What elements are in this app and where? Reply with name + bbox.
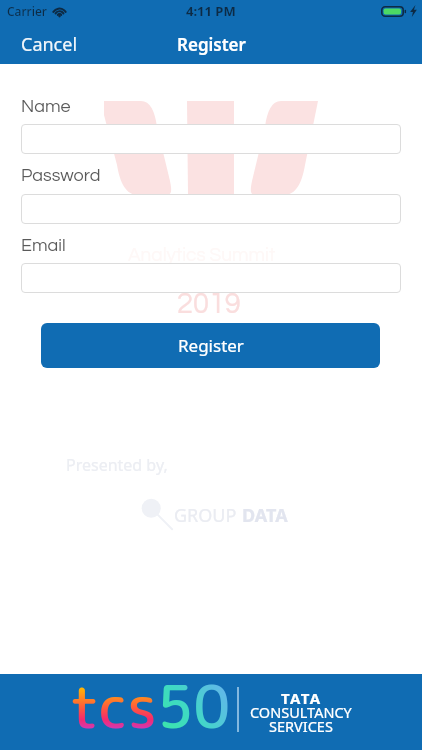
staticText: DATA: [242, 503, 288, 528]
staticText: GROUP: [174, 503, 242, 528]
staticText: TATA: [281, 688, 322, 708]
staticText: Password: [21, 166, 101, 185]
staticText: Email: [21, 236, 66, 255]
staticText: Register: [178, 334, 244, 357]
button[interactable]: Email input: [21, 263, 401, 293]
button[interactable]: Password input: [21, 194, 401, 224]
staticText: Carrier: [7, 3, 47, 19]
staticText: 50: [157, 666, 231, 742]
staticText: CONSULTANCY: [250, 702, 352, 722]
button[interactable]: Register: [41, 323, 380, 368]
button[interactable]: Name input: [21, 124, 401, 154]
staticText: Register: [177, 33, 246, 56]
staticText: tcs: [70, 666, 157, 742]
button[interactable]: Cancel: [0, 23, 96, 65]
staticText: Analytics Summit: [128, 245, 276, 265]
staticText: 2019: [177, 289, 241, 319]
staticText: 4:11 PM: [186, 2, 236, 20]
staticText: Name: [21, 97, 71, 116]
staticText: Presented by,: [66, 454, 168, 476]
staticText: SERVICES: [269, 716, 333, 736]
staticText: Cancel: [21, 32, 78, 56]
